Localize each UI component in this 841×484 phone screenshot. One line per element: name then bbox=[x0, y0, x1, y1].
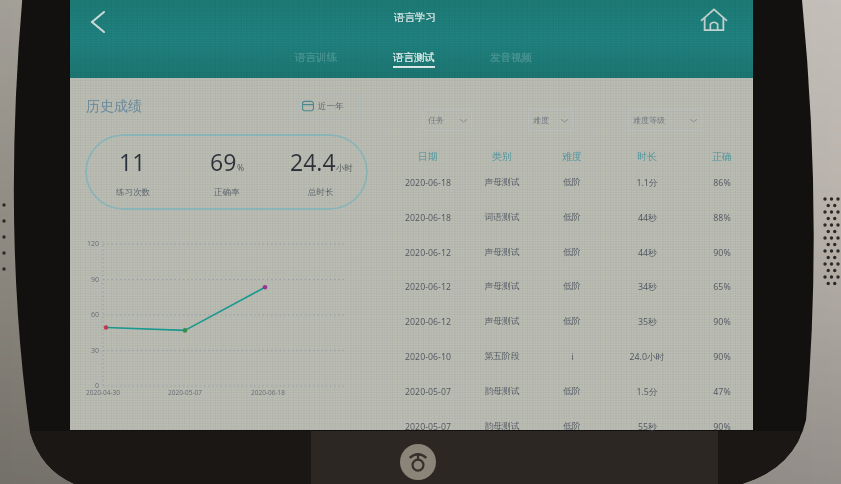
staticText: 2020-06-12 bbox=[405, 281, 451, 293]
staticText: 55秒 bbox=[638, 421, 657, 433]
staticText: 2020-06-18 bbox=[405, 212, 451, 224]
button[interactable]: 任务 bbox=[423, 109, 472, 131]
staticText: 第五阶段 bbox=[484, 351, 520, 362]
staticText: 90% bbox=[713, 247, 731, 259]
staticText: 任务 bbox=[428, 115, 444, 125]
button[interactable] bbox=[395, 167, 753, 201]
staticText: 90% bbox=[713, 421, 731, 433]
staticText: 难度 bbox=[533, 115, 549, 125]
staticText: 65% bbox=[713, 281, 731, 293]
staticText: 低阶 bbox=[563, 177, 581, 188]
staticText: 近一年 bbox=[318, 101, 344, 112]
staticText: 90% bbox=[713, 316, 731, 328]
button[interactable]: 语言测试 bbox=[384, 51, 444, 68]
staticText: 类别 bbox=[492, 150, 512, 163]
button[interactable] bbox=[395, 237, 753, 271]
button[interactable]: 难度等级 bbox=[628, 109, 702, 131]
staticText: 日期 bbox=[418, 150, 438, 163]
staticText: 低阶 bbox=[563, 247, 581, 258]
staticText: 69 bbox=[210, 146, 237, 177]
staticText: 低阶 bbox=[563, 316, 581, 327]
staticText: 声母测试 bbox=[484, 316, 520, 327]
staticText: 88% bbox=[713, 212, 731, 224]
staticText: 小时 bbox=[336, 163, 353, 174]
staticText: 90 bbox=[91, 275, 100, 285]
button[interactable] bbox=[395, 140, 753, 174]
staticText: 难度 bbox=[562, 150, 582, 163]
button[interactable] bbox=[395, 411, 753, 445]
staticText: 60 bbox=[91, 310, 100, 320]
staticText: 声母测试 bbox=[484, 247, 520, 258]
staticText: 120 bbox=[87, 239, 100, 249]
staticText: 正确率 bbox=[214, 187, 240, 198]
staticText: 11 bbox=[119, 146, 146, 177]
button[interactable] bbox=[395, 202, 753, 236]
staticText: 2020-06-12 bbox=[405, 247, 451, 259]
staticText: 声母测试 bbox=[484, 177, 520, 188]
staticText: 低阶 bbox=[563, 386, 581, 397]
button[interactable] bbox=[395, 306, 753, 340]
button[interactable]: Back bbox=[78, 3, 114, 39]
staticText: 时长 bbox=[637, 150, 657, 163]
staticText: 90% bbox=[713, 351, 731, 363]
staticText: 2020-05-07 bbox=[168, 388, 202, 397]
button[interactable]: 近一年 bbox=[296, 94, 361, 118]
staticText: 24.0小时 bbox=[629, 351, 665, 363]
staticText: 86% bbox=[713, 177, 731, 189]
staticText: 正确 bbox=[712, 150, 732, 163]
staticText: 词语测试 bbox=[484, 212, 520, 223]
staticText: 韵母测试 bbox=[484, 386, 520, 397]
staticText: 2020-05-07 bbox=[405, 421, 451, 433]
staticText: 2020-05-07 bbox=[405, 386, 451, 398]
button[interactable] bbox=[395, 376, 753, 410]
staticText: 低阶 bbox=[563, 421, 581, 432]
staticText: 2020-06-10 bbox=[405, 351, 451, 363]
staticText: 24.4 bbox=[290, 146, 336, 177]
staticText: 1.1分 bbox=[636, 177, 658, 189]
staticText: 发音视频 bbox=[490, 51, 532, 64]
staticText: 35秒 bbox=[638, 316, 657, 328]
staticText: 34秒 bbox=[638, 281, 657, 293]
staticText: 声母测试 bbox=[484, 281, 520, 292]
staticText: 2020-06-12 bbox=[405, 316, 451, 328]
staticText: 韵母测试 bbox=[484, 421, 520, 432]
staticText: 2020-06-18 bbox=[251, 388, 285, 397]
button[interactable]: 语言训练 bbox=[286, 51, 346, 66]
staticText: 0 bbox=[95, 381, 100, 391]
staticText: 1.5分 bbox=[636, 386, 658, 398]
staticText: 难度等级 bbox=[633, 115, 665, 125]
staticText: 47% bbox=[713, 386, 731, 398]
button[interactable]: Home bbox=[696, 4, 732, 36]
staticText: 语言测试 bbox=[393, 51, 435, 64]
staticText: 低阶 bbox=[563, 212, 581, 223]
staticText: 历史成绩 bbox=[86, 98, 142, 116]
staticText: % bbox=[237, 162, 245, 174]
staticText: 2020-06-18 bbox=[405, 177, 451, 189]
staticText: 语言训练 bbox=[295, 51, 337, 64]
staticText: 总时长 bbox=[308, 187, 334, 198]
staticText: 44秒 bbox=[638, 247, 657, 259]
staticText: 44秒 bbox=[638, 212, 657, 224]
button[interactable]: 难度 bbox=[528, 109, 573, 131]
staticText: 2020-04-30 bbox=[86, 388, 120, 397]
staticText: 语言学习 bbox=[394, 11, 436, 24]
button[interactable] bbox=[395, 341, 753, 375]
staticText: 练习次数 bbox=[116, 187, 150, 198]
staticText: 低阶 bbox=[563, 281, 581, 292]
button[interactable]: 发音视频 bbox=[481, 51, 541, 66]
button[interactable] bbox=[395, 271, 753, 305]
staticText: i bbox=[571, 351, 574, 363]
staticText: 30 bbox=[91, 346, 100, 356]
